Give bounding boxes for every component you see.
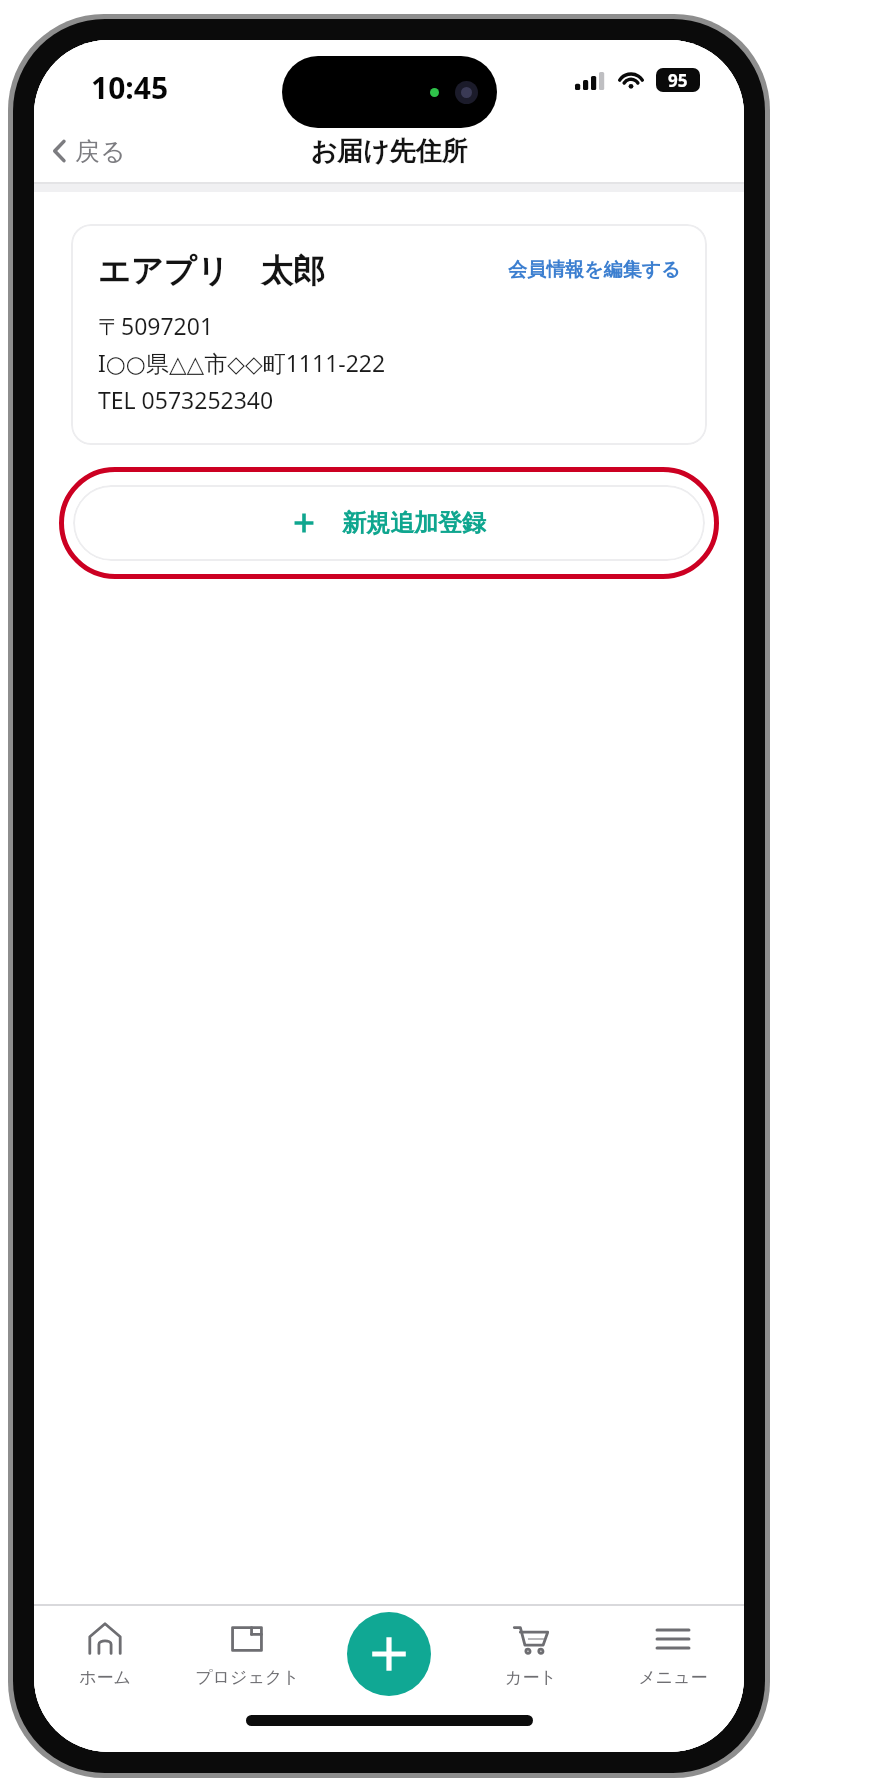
button[interactable]: メニュー: [602, 1614, 744, 1714]
button[interactable]: カート: [460, 1614, 602, 1714]
staticText: プロジェクト: [195, 1667, 300, 1688]
button[interactable]: 戻る: [34, 123, 140, 179]
button[interactable]: エアプリ 太郎: [71, 224, 707, 445]
staticText: お届け先住所: [310, 135, 468, 168]
staticText: I○○県△△市◇◇町1111-222: [98, 347, 386, 378]
staticText: 戻る: [75, 136, 126, 167]
button[interactable]: Add: [347, 1612, 431, 1696]
button[interactable]: ホーム: [34, 1614, 176, 1714]
button[interactable]: 会員情報を編集する: [506, 252, 683, 288]
staticText: TEL 0573252340: [98, 384, 274, 415]
staticText: 新規追加登録: [342, 508, 486, 538]
staticText: 95: [668, 69, 688, 92]
staticText: メニュー: [638, 1667, 708, 1688]
staticText: エアプリ 太郎: [98, 248, 325, 292]
staticText: 10:45: [91, 67, 169, 108]
button[interactable]: 新規追加登録: [73, 485, 705, 561]
staticText: 〒5097201: [98, 310, 214, 341]
button[interactable]: プロジェクト: [176, 1614, 318, 1714]
staticText: カート: [505, 1667, 557, 1688]
staticText: 会員情報を編集する: [508, 258, 681, 282]
staticText: ホーム: [79, 1667, 131, 1688]
